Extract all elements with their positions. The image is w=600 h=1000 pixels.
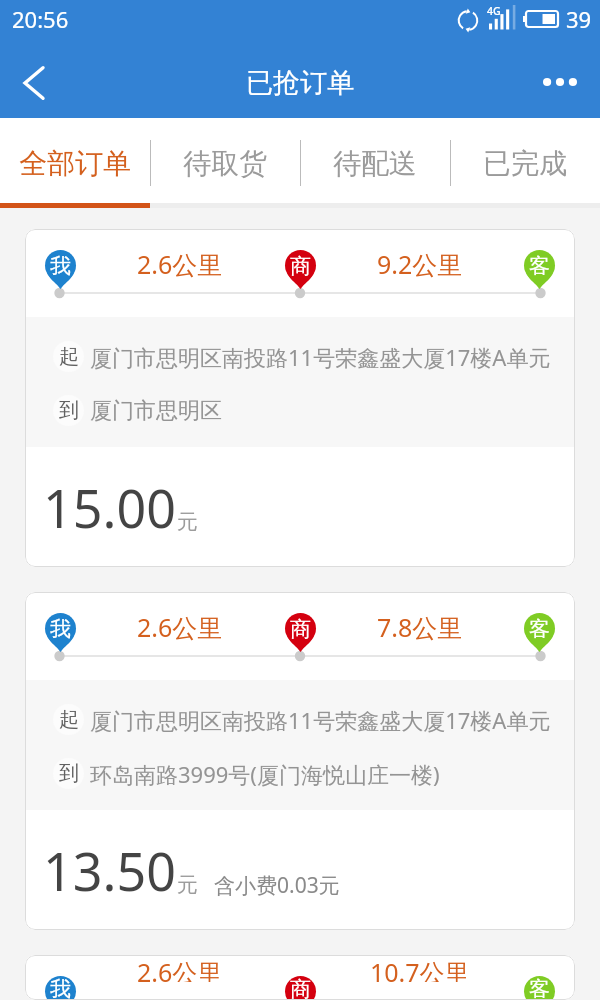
button[interactable]: 全部订单	[0, 118, 150, 208]
staticText: 4G	[487, 4, 501, 18]
button[interactable]: 我	[25, 229, 575, 567]
button[interactable]: 我	[25, 955, 575, 1000]
button[interactable]: 待取货	[150, 118, 300, 208]
button[interactable]: 已完成	[450, 118, 600, 208]
staticText: 环岛南路3999号(厦门海悦山庄一楼)	[90, 759, 440, 789]
staticText: 厦门市思明区南投路11号荣鑫盛大厦17楼A单元	[90, 705, 551, 735]
staticText: 我	[50, 976, 71, 1000]
staticText: 20:56	[12, 4, 69, 34]
staticText: 9.2公里	[377, 247, 463, 281]
staticText: 元	[177, 872, 198, 898]
staticText: 客	[529, 253, 550, 279]
button[interactable]: 待配送	[300, 118, 450, 208]
staticText: 到	[59, 761, 79, 786]
staticText: 已抢订单	[246, 66, 354, 100]
staticText: 客	[529, 616, 550, 642]
staticText: 13.50	[43, 835, 176, 906]
staticText: 含小费0.03元	[214, 871, 340, 900]
staticText: 客	[529, 976, 550, 1000]
staticText: 待配送	[333, 146, 417, 181]
button[interactable]: 我	[25, 592, 575, 930]
staticText: 商	[290, 253, 311, 279]
staticText: 2.6公里	[137, 955, 223, 982]
button[interactable]: More options	[534, 48, 600, 118]
staticText: 厦门市思明区南投路11号荣鑫盛大厦17楼A单元	[90, 342, 551, 372]
staticText: 起	[59, 707, 79, 732]
staticText: 10.7公里	[370, 955, 470, 982]
staticText: 我	[50, 616, 71, 642]
staticText: 商	[290, 976, 311, 1000]
staticText: 厦门市思明区	[90, 397, 222, 425]
staticText: 7.8公里	[377, 610, 463, 644]
staticText: 2.6公里	[137, 247, 223, 281]
staticText: 全部订单	[19, 146, 131, 181]
staticText: 15.00	[43, 472, 176, 543]
staticText: 2.6公里	[137, 610, 223, 644]
staticText: 待取货	[183, 146, 267, 181]
staticText: 39	[566, 4, 592, 34]
staticText: 已完成	[483, 146, 567, 181]
staticText: 起	[59, 344, 79, 369]
staticText: 元	[177, 509, 198, 535]
staticText: 到	[59, 398, 79, 423]
staticText: 商	[290, 616, 311, 642]
button[interactable]: Back	[0, 48, 68, 118]
staticText: 我	[50, 253, 71, 279]
